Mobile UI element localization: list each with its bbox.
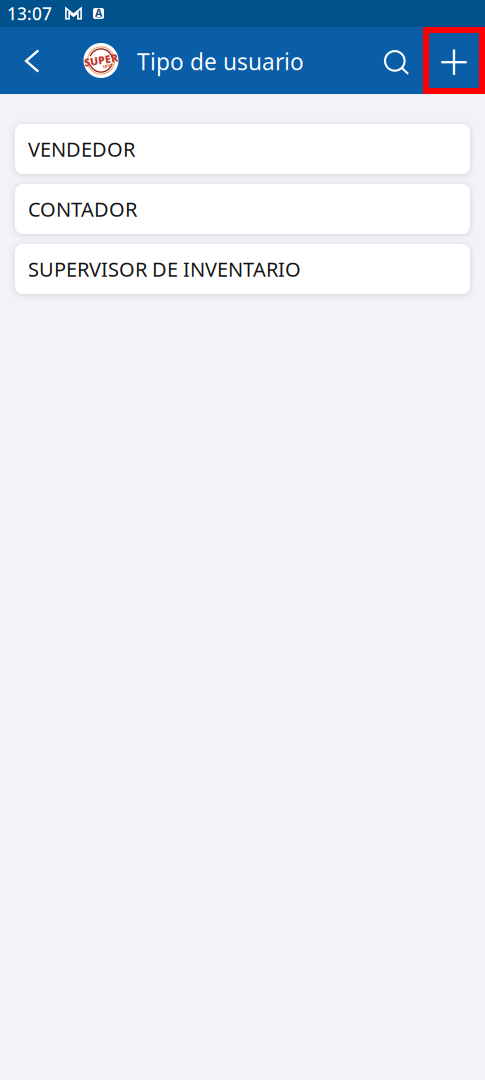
button[interactable]: VENDEDOR	[15, 124, 470, 174]
button[interactable]: SUPERVISOR DE INVENTARIO	[15, 244, 470, 294]
staticText: 13:07	[7, 2, 52, 25]
staticText: VENDEDOR	[28, 136, 135, 162]
button[interactable]: Search	[371, 27, 423, 94]
staticText: SUPERVISOR DE INVENTARIO	[28, 256, 301, 282]
staticText: CONTADOR	[28, 196, 137, 222]
staticText: uno	[102, 62, 111, 69]
button[interactable]: Add	[423, 27, 485, 94]
staticText: Tipo de usuario	[137, 46, 304, 76]
staticText: SUPER	[84, 53, 118, 67]
staticText: A	[95, 5, 102, 20]
button[interactable]: Back	[8, 27, 56, 94]
button[interactable]: CONTADOR	[15, 184, 470, 234]
